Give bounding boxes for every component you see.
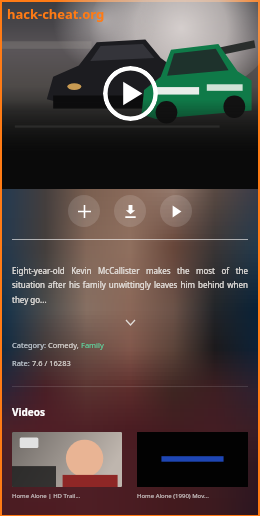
button[interactable]: Show more [2, 315, 258, 329]
staticText: Comedy, [48, 340, 81, 350]
staticText: Home Alone (1990) Mov... [137, 492, 209, 500]
button[interactable]: Home Alone | HD Trail... [12, 432, 122, 500]
staticText: Rate: [12, 358, 32, 368]
button[interactable]: Home Alone (1990) Mov... [137, 432, 248, 500]
staticText: hack-cheat.org [7, 5, 105, 23]
button[interactable]: Play [103, 66, 158, 121]
button[interactable]: Play trailer [160, 195, 192, 227]
staticText: Eight-year-old Kevin McCallister makes t… [12, 265, 248, 306]
staticText: 7.6 / 16283 [32, 358, 71, 368]
button[interactable]: Add to list [68, 195, 100, 227]
staticText: Family [81, 340, 104, 350]
staticText: Videos [12, 405, 46, 419]
staticText: Category: [12, 340, 48, 350]
button[interactable]: Download [114, 195, 146, 227]
staticText: Home Alone | HD Trail... [12, 492, 81, 500]
